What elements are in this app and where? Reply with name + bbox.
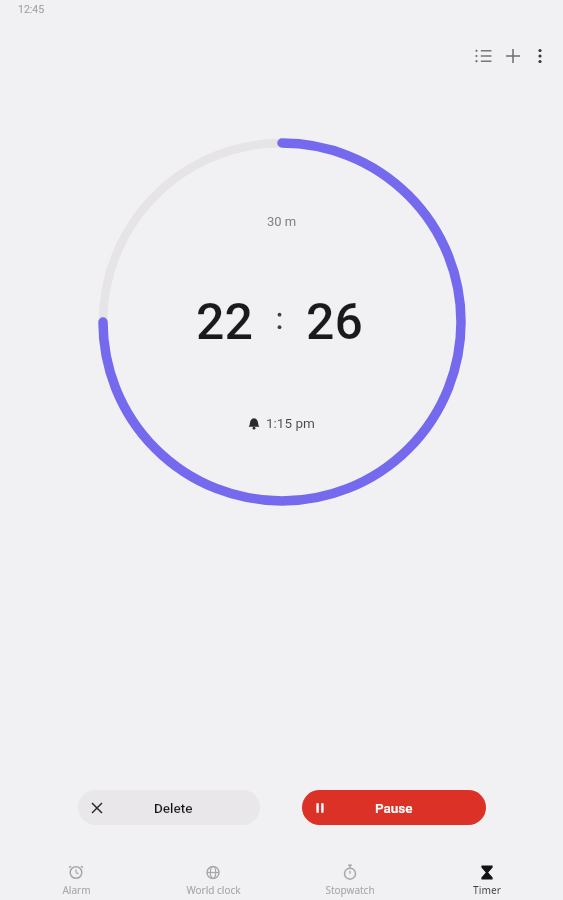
button[interactable]: Delete (78, 790, 260, 825)
staticText: Delete (154, 800, 193, 816)
staticText: Stopwatch (325, 883, 375, 897)
button[interactable]: Alarm (31, 860, 121, 897)
button[interactable]: World clock (168, 860, 258, 897)
button[interactable] (528, 44, 552, 68)
staticText: 1:15 pm (266, 415, 315, 431)
staticText: 26 (306, 293, 363, 352)
staticText: Timer (473, 883, 501, 897)
button[interactable]: Timer (442, 860, 532, 897)
staticText: World clock (186, 883, 241, 897)
button[interactable]: Stopwatch (305, 860, 395, 897)
staticText: Alarm (62, 883, 91, 897)
button[interactable]: Pause (302, 790, 486, 825)
button[interactable] (472, 44, 496, 68)
staticText: 30 m (267, 214, 297, 229)
staticText: 22 (196, 293, 253, 352)
button[interactable] (501, 44, 525, 68)
staticText: Pause (375, 800, 413, 816)
staticText: 12:45 (18, 3, 45, 15)
